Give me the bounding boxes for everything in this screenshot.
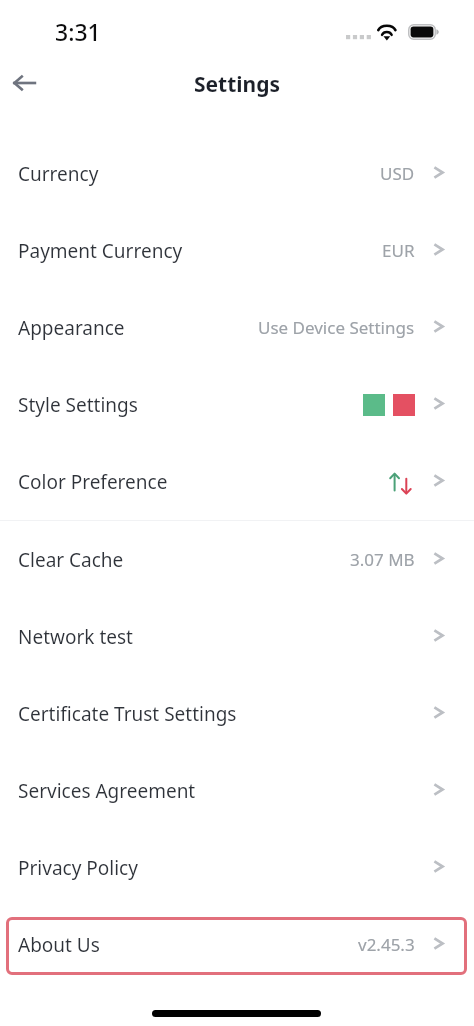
button[interactable]: Back	[2, 61, 46, 105]
staticText: Settings	[194, 70, 281, 99]
staticText: v2.45.3	[358, 933, 415, 956]
staticText: Certificate Trust Settings	[18, 701, 237, 727]
button[interactable]: Services Agreement	[0, 752, 474, 829]
staticText: Appearance	[18, 315, 125, 341]
button[interactable]: About Us	[0, 906, 474, 983]
staticText: 3:31	[55, 16, 101, 47]
button[interactable]: Currency	[0, 135, 474, 212]
staticText: Network test	[18, 624, 133, 650]
staticText: Style Settings	[18, 392, 138, 418]
staticText: Use Device Settings	[258, 316, 415, 339]
button[interactable]: Privacy Policy	[0, 829, 474, 906]
button[interactable]: Payment Currency	[0, 212, 474, 289]
button[interactable]: Network test	[0, 598, 474, 675]
button[interactable]: Color Preference	[0, 443, 474, 520]
staticText: Services Agreement	[18, 778, 196, 804]
button[interactable]: Appearance	[0, 289, 474, 366]
staticText: About Us	[18, 932, 100, 958]
staticText: 3.07 MB	[350, 548, 415, 571]
button[interactable]: Certificate Trust Settings	[0, 675, 474, 752]
button[interactable]: Clear Cache	[0, 521, 474, 598]
button[interactable]: Style Settings	[0, 366, 474, 443]
staticText: EUR	[382, 239, 415, 262]
staticText: Payment Currency	[18, 238, 183, 264]
staticText: Color Preference	[18, 469, 168, 495]
staticText: Currency	[18, 161, 99, 187]
staticText: Clear Cache	[18, 547, 124, 573]
staticText: USD	[380, 162, 415, 185]
staticText: Privacy Policy	[18, 855, 138, 881]
